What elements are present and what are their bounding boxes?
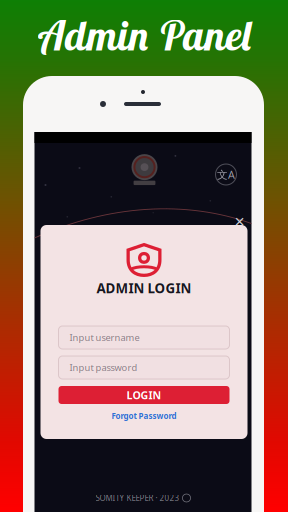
- button[interactable]: Forgot Password: [58, 410, 229, 422]
- button[interactable]: Close: [231, 214, 247, 230]
- staticText: Forgot Password: [111, 411, 176, 421]
- staticText: ADMIN LOGIN: [96, 279, 191, 297]
- staticText: Admin Panel: [39, 9, 252, 61]
- staticText: 文A: [217, 167, 235, 182]
- button[interactable]: LOGIN: [58, 386, 229, 404]
- button[interactable]: Translate: [213, 162, 238, 187]
- staticText: Input password: [69, 361, 137, 374]
- button[interactable]: Input username: [58, 326, 229, 349]
- staticText: LOGIN: [126, 388, 161, 402]
- button[interactable]: Input password: [58, 356, 229, 379]
- staticText: SOMITY KEEPER · 2023: [95, 493, 179, 503]
- staticText: Input username: [69, 331, 139, 344]
- staticText: ✕: [234, 214, 245, 229]
